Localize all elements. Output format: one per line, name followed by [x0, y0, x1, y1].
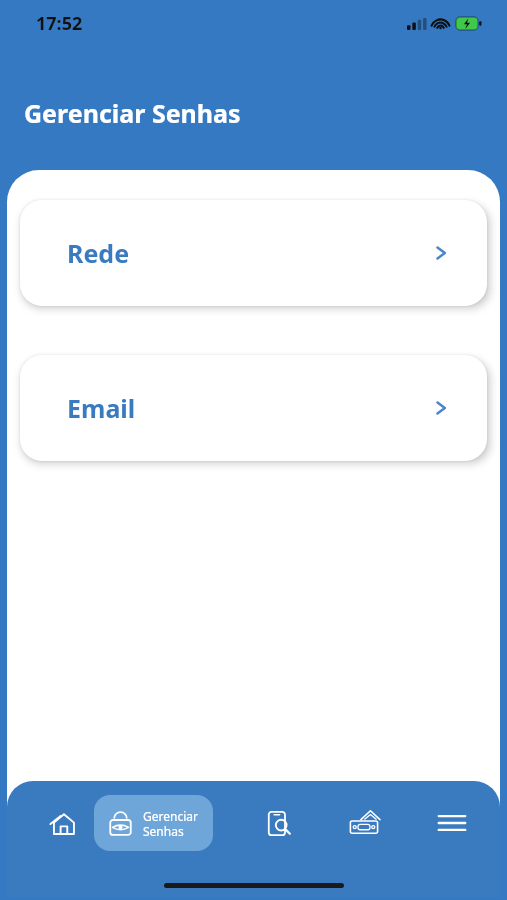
button[interactable]: Gerenciar Senhas [94, 795, 213, 851]
button[interactable]: Menu [430, 801, 474, 845]
staticText: 17:52 [36, 11, 83, 36]
button[interactable]: Email [20, 355, 487, 461]
staticText: Email [67, 391, 136, 425]
button[interactable]: Rede [20, 200, 487, 306]
staticText: Gerenciar Senhas [143, 808, 198, 839]
button[interactable]: Imóveis [342, 800, 388, 846]
staticText: Gerenciar Senhas [24, 96, 241, 130]
staticText: Rede [67, 236, 130, 270]
button[interactable]: Buscar dispositivo [256, 801, 300, 845]
button[interactable]: Início [41, 801, 85, 845]
